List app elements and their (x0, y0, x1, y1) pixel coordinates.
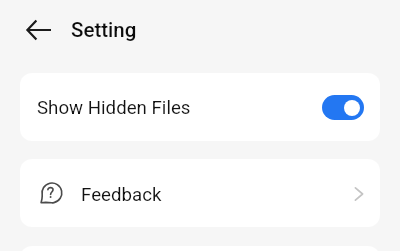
staticText: Setting (71, 18, 137, 42)
button[interactable]: Back (15, 6, 63, 54)
button[interactable]: Feedback (20, 159, 380, 227)
button[interactable]: Show Hidden Files (20, 73, 380, 141)
staticText: Feedback (81, 184, 162, 206)
button[interactable]: Show Hidden Files (322, 95, 364, 120)
staticText: Show Hidden Files (37, 97, 191, 119)
